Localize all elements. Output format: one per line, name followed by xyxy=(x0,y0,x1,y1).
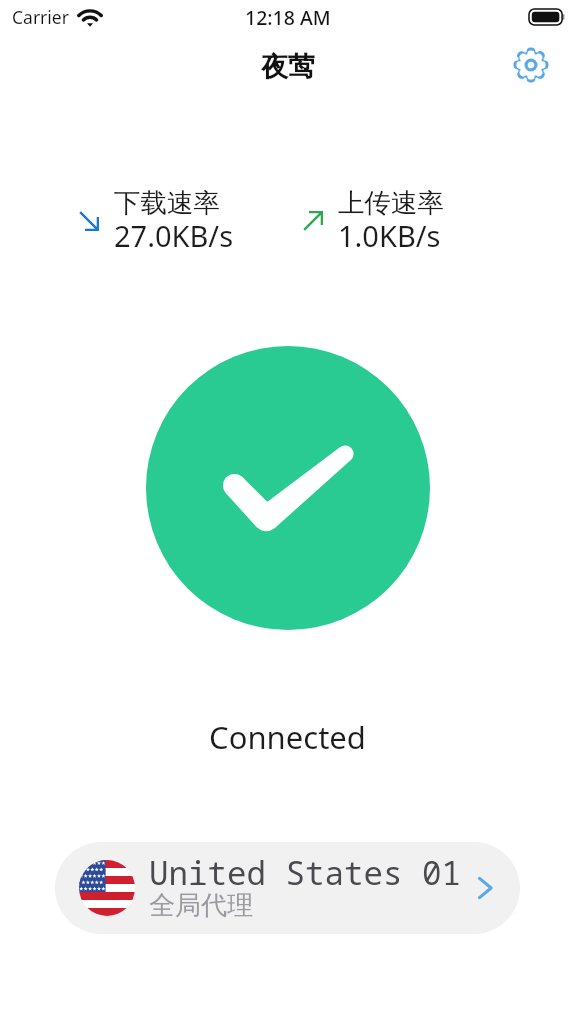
staticText: 27.0KB/s xyxy=(114,216,234,255)
staticText: United States 01 xyxy=(149,850,462,894)
staticText: 全局代理 xyxy=(149,889,253,922)
button[interactable]: Settings xyxy=(507,38,555,86)
button[interactable]: United States 01 xyxy=(55,842,520,934)
staticText: Carrier xyxy=(12,5,69,29)
staticText: 上传速率 xyxy=(338,186,444,219)
staticText: Connected xyxy=(0,716,575,758)
button[interactable]: Connected, tap to disconnect xyxy=(146,346,430,630)
staticText: 12:18 AM xyxy=(245,4,331,31)
staticText: 1.0KB/s xyxy=(338,216,441,255)
staticText: 下载速率 xyxy=(114,186,220,219)
staticText: 夜莺 xyxy=(261,50,315,84)
